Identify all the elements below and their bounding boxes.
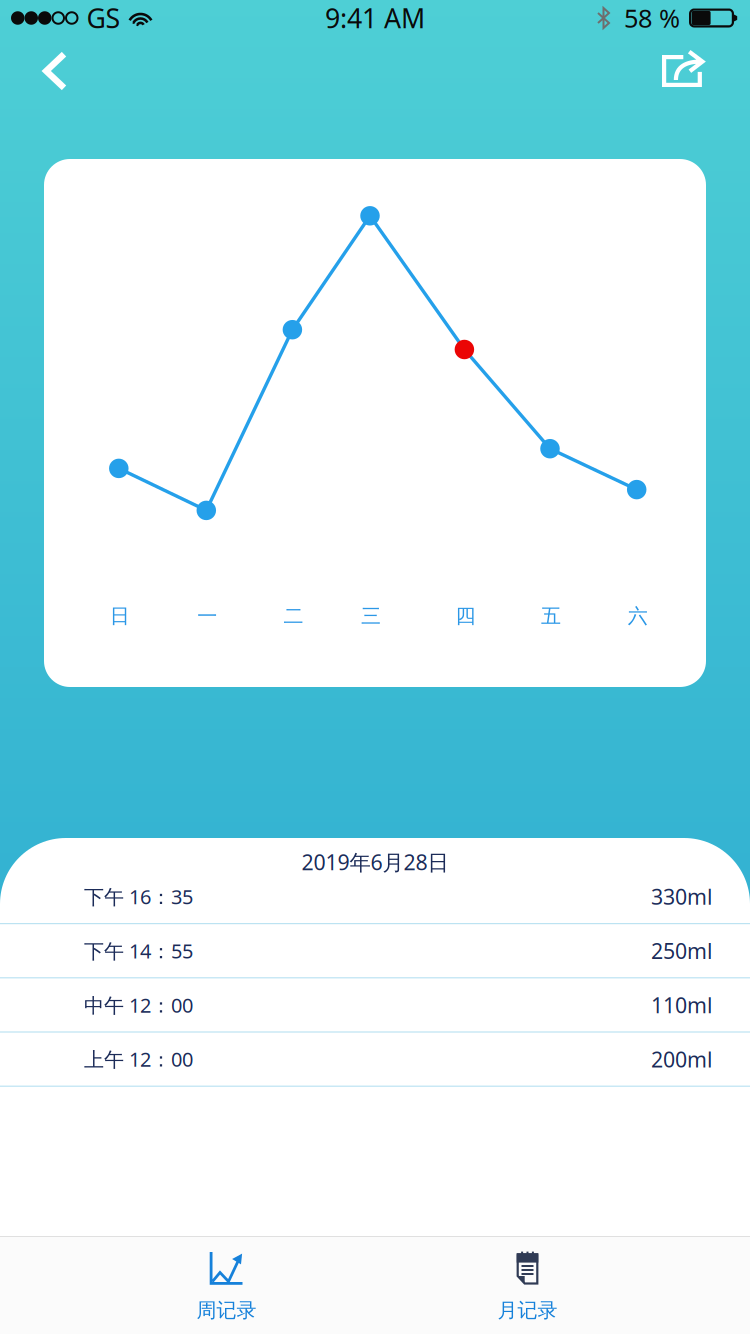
staticText: 330ml: [651, 882, 713, 911]
staticText: 9:41 AM: [325, 0, 425, 36]
staticText: 周记录: [196, 1298, 256, 1323]
staticText: 日: [110, 604, 130, 628]
staticText: 四: [455, 604, 475, 628]
staticText: 下午 16：35: [84, 883, 193, 910]
staticText: 二: [283, 604, 303, 628]
button[interactable]: 月记录: [377, 1237, 678, 1334]
staticText: 月记录: [497, 1298, 557, 1323]
staticText: 三: [361, 604, 381, 628]
staticText: 中午 12：00: [84, 992, 193, 1018]
staticText: GS: [86, 0, 120, 36]
staticText: 上午 12：00: [84, 1046, 193, 1072]
staticText: 一: [197, 604, 217, 628]
button[interactable]: 周记录: [76, 1237, 377, 1334]
staticText: 250ml: [651, 936, 713, 965]
staticText: 五: [541, 604, 561, 628]
staticText: 110ml: [651, 991, 713, 1019]
staticText: 六: [628, 604, 648, 628]
staticText: 58 %: [624, 1, 680, 35]
button[interactable]: Share: [636, 41, 750, 119]
button[interactable]: Back: [0, 40, 93, 120]
staticText: 下午 14：55: [84, 937, 193, 964]
staticText: 200ml: [651, 1045, 713, 1073]
staticText: 2019年6月28日: [301, 848, 448, 876]
